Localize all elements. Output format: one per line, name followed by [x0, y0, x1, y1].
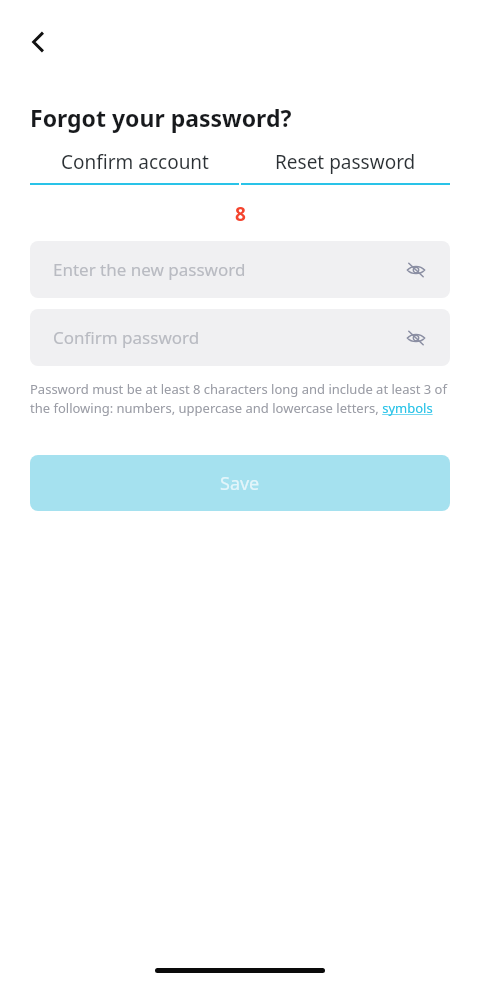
button[interactable]: Enter the new password	[30, 241, 450, 298]
staticText: Password must be at least 8 characters l…	[30, 380, 450, 417]
button[interactable]: Confirm password	[30, 309, 450, 366]
button[interactable]: Confirm account	[30, 149, 239, 185]
button[interactable]: Save	[30, 455, 450, 511]
button[interactable]: Show password	[402, 324, 430, 352]
staticText: 8	[235, 201, 246, 227]
staticText: Confirm account	[61, 149, 209, 175]
staticText: Enter the new password	[53, 258, 402, 281]
button[interactable]: Reset password	[241, 149, 450, 185]
button[interactable]: Back	[18, 22, 58, 62]
staticText: Reset password	[275, 149, 416, 175]
staticText: Forgot your password?	[30, 102, 292, 133]
button[interactable]: Show password	[402, 256, 430, 284]
staticText: Save	[220, 471, 260, 496]
staticText: Confirm password	[53, 326, 402, 349]
